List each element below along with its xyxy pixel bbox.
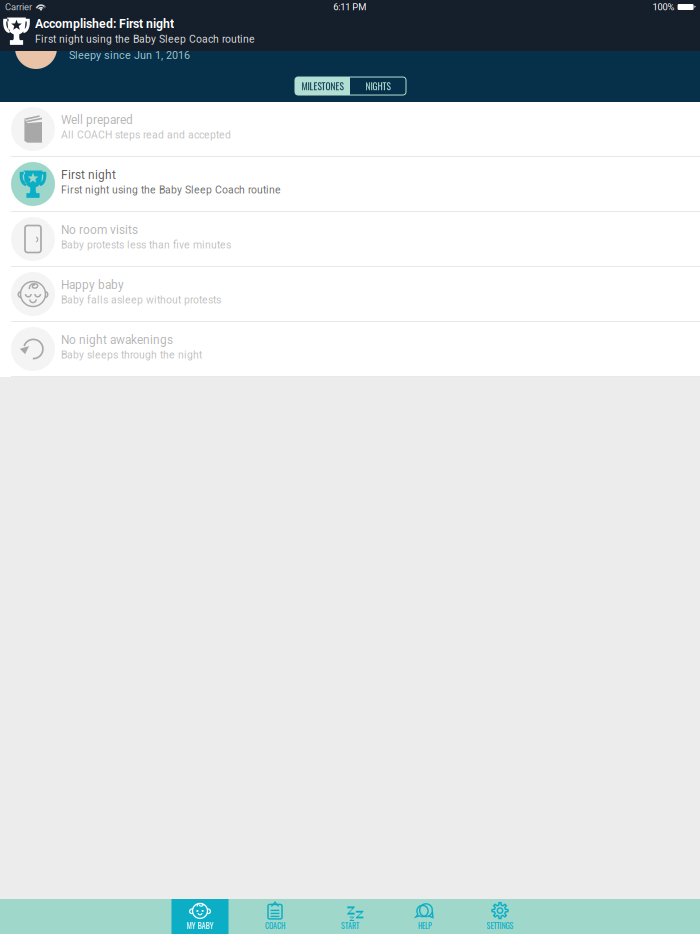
staticText: No room visits: [61, 223, 138, 237]
button[interactable]: COACH: [246, 899, 303, 934]
staticText: SETTINGS: [486, 920, 513, 931]
staticText: MY BABY: [186, 920, 213, 931]
button[interactable]: MY BABY: [171, 899, 228, 934]
button[interactable]: SETTINGS: [471, 899, 528, 934]
button[interactable]: HELP: [396, 899, 453, 934]
button[interactable]: MILESTONES: [295, 77, 350, 95]
button[interactable]: START: [321, 899, 378, 934]
staticText: 6:11 PM: [333, 1, 366, 12]
staticText: HELP: [418, 920, 432, 931]
staticText: First night using the Baby Sleep Coach r…: [35, 33, 255, 45]
staticText: Carrier: [5, 1, 32, 12]
staticText: START: [341, 920, 359, 931]
button[interactable]: No room visits: [0, 212, 700, 267]
staticText: Accomplished: First night: [35, 17, 174, 31]
staticText: 100%: [653, 1, 675, 12]
staticText: Baby falls asleep without protests: [61, 294, 221, 306]
button[interactable]: Well prepared: [0, 102, 700, 157]
staticText: MILESTONES: [301, 79, 343, 93]
staticText: No night awakenings: [61, 333, 173, 347]
staticText: Well prepared: [61, 113, 133, 127]
button[interactable]: No night awakenings: [0, 322, 700, 377]
staticText: First night using the Baby Sleep Coach r…: [61, 184, 281, 196]
button[interactable]: First night: [0, 157, 700, 212]
button[interactable]: NIGHTS: [350, 77, 406, 95]
staticText: Baby protests less than five minutes: [61, 239, 231, 251]
staticText: Sleepy since Jun 1, 2016: [69, 49, 190, 62]
staticText: Happy baby: [61, 278, 124, 292]
staticText: NIGHTS: [365, 79, 390, 93]
staticText: COACH: [265, 920, 285, 931]
staticText: All COACH steps read and accepted: [61, 129, 231, 141]
button[interactable]: Happy baby: [0, 267, 700, 322]
staticText: First night: [61, 168, 116, 182]
staticText: Baby sleeps through the night: [61, 349, 202, 361]
